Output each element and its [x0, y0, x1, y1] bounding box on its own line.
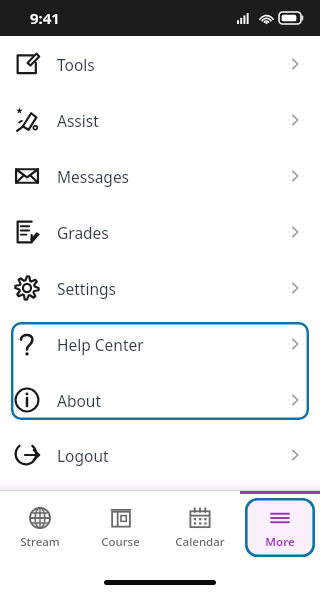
button[interactable]: Stream [0, 491, 80, 561]
staticText: Messages [57, 166, 130, 187]
staticText: Logout [57, 445, 109, 466]
staticText: Tools [57, 54, 95, 75]
staticText: Assist [57, 110, 99, 131]
staticText: Settings [57, 278, 116, 299]
staticText: Calendar [175, 534, 225, 550]
button[interactable]: Settings [0, 260, 320, 316]
staticText: Help Center [57, 334, 144, 355]
staticText: Grades [57, 222, 109, 243]
button[interactable]: About [0, 372, 320, 428]
staticText: Stream [20, 534, 60, 550]
button[interactable]: Tools [0, 36, 320, 92]
button[interactable]: Calendar [160, 491, 240, 561]
staticText: More [265, 534, 295, 550]
staticText: About [57, 390, 101, 411]
staticText: 9:41 [30, 8, 60, 28]
button[interactable]: Logout [0, 428, 320, 482]
button[interactable]: Help Center [0, 316, 320, 372]
button[interactable]: Course [80, 491, 160, 561]
staticText: Course [101, 534, 140, 550]
button[interactable]: Assist [0, 92, 320, 148]
button[interactable]: More [240, 491, 320, 561]
button[interactable]: Grades [0, 204, 320, 260]
button[interactable]: Messages [0, 148, 320, 204]
